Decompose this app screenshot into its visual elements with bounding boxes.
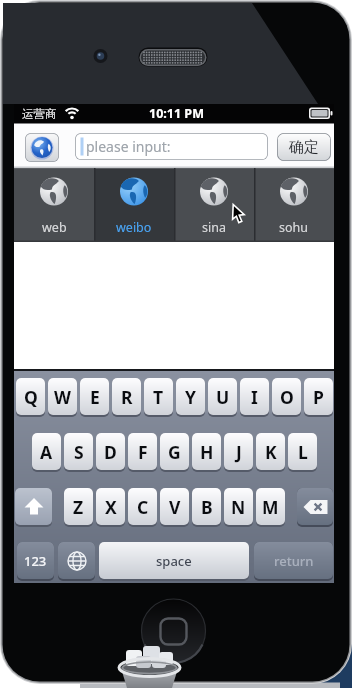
button[interactable]: M	[256, 488, 285, 527]
button[interactable]: S	[64, 433, 93, 472]
button[interactable]: I	[240, 378, 269, 417]
button[interactable]: D	[96, 433, 125, 472]
button[interactable]: T	[144, 378, 173, 417]
staticText: J	[236, 440, 242, 464]
staticText: 确定	[289, 138, 319, 157]
button[interactable]: H	[192, 433, 221, 472]
button[interactable]: web	[14, 168, 94, 242]
staticText: S	[74, 440, 84, 464]
staticText: I	[251, 385, 258, 409]
button[interactable]: F	[128, 433, 157, 472]
button[interactable]: V	[160, 488, 189, 527]
staticText: please input:	[86, 137, 171, 156]
staticText: 运营商	[22, 107, 57, 121]
staticText: K	[265, 440, 277, 464]
button[interactable]: B	[192, 488, 221, 527]
staticText: H	[200, 440, 214, 464]
staticText: 10:11 PM	[149, 105, 204, 122]
button[interactable]: J	[224, 433, 253, 472]
staticText: web	[42, 219, 67, 236]
staticText: F	[138, 440, 148, 464]
staticText: L	[298, 440, 308, 464]
staticText: C	[137, 495, 149, 519]
staticText: A	[40, 440, 53, 464]
button[interactable]: Z	[64, 488, 93, 527]
staticText: Z	[73, 495, 84, 519]
staticText: 123	[24, 552, 47, 570]
button[interactable]: R	[112, 378, 141, 417]
staticText: E	[90, 385, 100, 409]
staticText: O	[280, 385, 294, 409]
button[interactable]: N	[224, 488, 253, 527]
staticText: P	[313, 385, 324, 409]
staticText: N	[231, 495, 246, 519]
staticText: V	[169, 495, 181, 519]
staticText: R	[121, 385, 133, 409]
button[interactable]: 123	[17, 542, 54, 581]
button[interactable]: C	[128, 488, 157, 527]
staticText: Q	[24, 385, 38, 409]
staticText: T	[153, 385, 164, 409]
staticText: W	[54, 385, 71, 409]
staticText: B	[201, 495, 213, 519]
button[interactable]: P	[304, 378, 333, 417]
button[interactable]: X	[96, 488, 125, 527]
staticText: Y	[185, 385, 196, 409]
button[interactable]: W	[48, 378, 77, 417]
staticText: space	[156, 552, 192, 570]
button[interactable]: sohu	[254, 168, 334, 242]
button[interactable]: O	[272, 378, 301, 417]
button[interactable]: Q	[16, 378, 45, 417]
button[interactable]	[58, 542, 95, 581]
button[interactable]: space	[99, 542, 249, 581]
staticText: D	[104, 440, 117, 464]
button[interactable]: U	[208, 378, 237, 417]
button[interactable]	[25, 133, 59, 162]
button[interactable]: E	[80, 378, 109, 417]
button[interactable]: L	[288, 433, 317, 472]
button[interactable]: Y	[176, 378, 205, 417]
button[interactable]	[297, 488, 333, 527]
button[interactable]: K	[256, 433, 285, 472]
button[interactable]: 确定	[277, 133, 331, 161]
button[interactable]: G	[160, 433, 189, 472]
button[interactable]: A	[32, 433, 61, 472]
button[interactable]: sina	[174, 168, 254, 242]
staticText: sohu	[279, 219, 309, 236]
button[interactable]	[15, 488, 52, 527]
staticText: M	[262, 495, 279, 519]
staticText: weibo	[116, 219, 152, 236]
button[interactable]: return	[254, 542, 333, 581]
staticText: X	[105, 495, 117, 519]
staticText: return	[274, 552, 314, 570]
staticText: sina	[202, 219, 226, 236]
staticText: U	[216, 385, 230, 409]
button[interactable]: please input:	[75, 133, 268, 160]
staticText: G	[168, 440, 181, 464]
button[interactable]: weibo	[94, 168, 174, 242]
